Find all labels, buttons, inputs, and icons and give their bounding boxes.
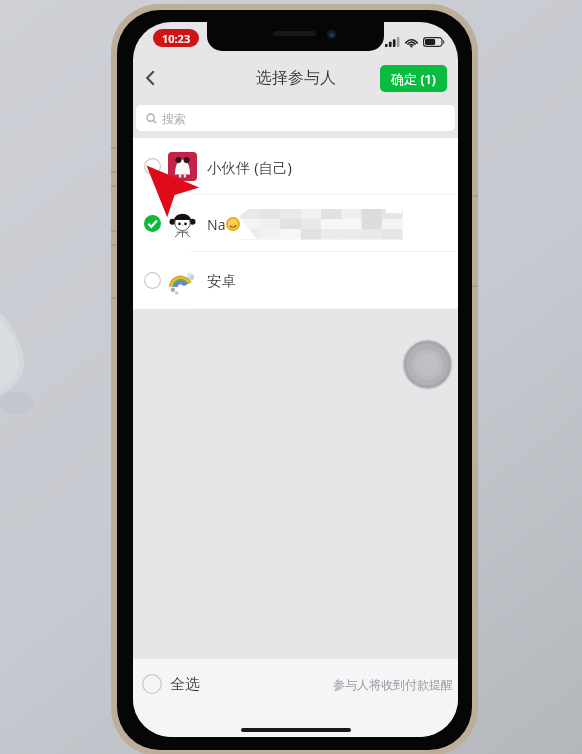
button[interactable]: Back <box>133 59 167 97</box>
button[interactable]: 搜索 <box>136 105 455 131</box>
staticText: 确定 (1) <box>391 70 436 88</box>
button[interactable]: Na <box>133 195 458 252</box>
staticText: 选择参与人 <box>256 68 336 88</box>
staticText: Na <box>207 215 226 234</box>
staticText: 搜索 <box>162 111 186 126</box>
button[interactable]: 小伙伴 (自己) <box>133 138 458 195</box>
staticText: 小伙伴 (自己) <box>207 157 292 177</box>
button[interactable]: 全选 <box>133 664 458 704</box>
button[interactable]: AssistiveTouch <box>402 339 453 390</box>
staticText: 参与人将收到付款提醒 <box>333 677 453 692</box>
button[interactable]: 确定 (1) <box>380 65 447 92</box>
staticText: 10:23 <box>162 31 191 46</box>
staticText: 全选 <box>170 675 200 694</box>
staticText: 安卓 <box>207 272 236 290</box>
button[interactable]: 安卓 <box>133 252 458 309</box>
